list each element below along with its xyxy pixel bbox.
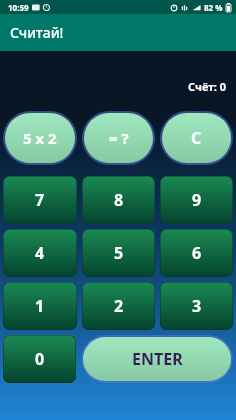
staticText: C (191, 127, 202, 149)
button[interactable]: C (159, 110, 234, 166)
staticText: 4 (35, 242, 45, 264)
staticText: 6 (192, 242, 202, 264)
staticText: 1 (35, 295, 45, 317)
button[interactable]: 3 (160, 282, 233, 330)
staticText: 7 (35, 189, 45, 211)
staticText: 10:59 (8, 2, 29, 13)
button[interactable]: 5 (82, 229, 155, 277)
button[interactable]: 8 (82, 176, 155, 224)
button[interactable]: 0 (3, 335, 76, 383)
button[interactable]: 9 (160, 176, 233, 224)
button[interactable]: 1 (3, 282, 77, 330)
staticText: 8 (114, 189, 124, 211)
button[interactable]: 2 (82, 282, 155, 330)
staticText: 3 (192, 295, 202, 317)
button[interactable]: 5 x 2 (2, 110, 78, 166)
button[interactable]: 6 (160, 229, 233, 277)
button[interactable]: ENTER (81, 335, 233, 383)
staticText: = ? (109, 128, 129, 148)
staticText: Счёт: 0 (188, 79, 226, 94)
staticText: 5 x 2 (23, 128, 57, 148)
button[interactable]: = ? (81, 110, 156, 166)
staticText: 82 % (204, 2, 223, 13)
staticText: Считай! (10, 23, 64, 42)
staticText: 9 (192, 189, 202, 211)
button[interactable]: 7 (3, 176, 77, 224)
staticText: 0 (35, 348, 45, 370)
staticText: 5 (114, 242, 124, 264)
button[interactable]: 4 (3, 229, 77, 277)
staticText: 2 (114, 295, 124, 317)
staticText: ENTER (132, 348, 183, 370)
